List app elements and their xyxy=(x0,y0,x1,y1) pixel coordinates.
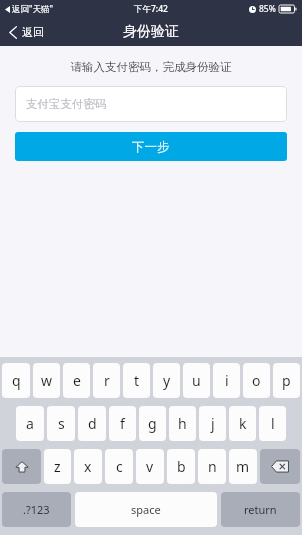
button[interactable]: Backspace xyxy=(260,449,300,484)
button[interactable]: q xyxy=(2,363,30,398)
button[interactable]: 支付宝支付密码 xyxy=(15,86,287,122)
button[interactable]: g xyxy=(139,406,166,441)
staticText: k xyxy=(239,414,247,433)
button[interactable]: 返回"天猫" xyxy=(0,0,57,18)
button[interactable]: z xyxy=(44,449,71,484)
button[interactable]: w xyxy=(33,363,60,398)
button[interactable]: i xyxy=(213,363,240,398)
staticText: h xyxy=(178,414,187,433)
button[interactable]: u xyxy=(183,363,210,398)
other: Alarm xyxy=(249,6,256,13)
staticText: m xyxy=(236,457,250,476)
staticText: b xyxy=(177,457,186,476)
staticText: t xyxy=(134,371,140,390)
button[interactable]: h xyxy=(169,406,196,441)
staticText: .?123 xyxy=(23,502,50,517)
staticText: a xyxy=(26,414,34,433)
button[interactable]: k xyxy=(229,406,256,441)
button[interactable]: e xyxy=(63,363,90,398)
staticText: w xyxy=(41,371,53,390)
staticText: c xyxy=(116,457,123,476)
staticText: o xyxy=(252,371,261,390)
staticText: 返回 xyxy=(22,25,44,39)
button[interactable]: f xyxy=(109,406,136,441)
staticText: g xyxy=(148,414,157,433)
staticText: v xyxy=(146,457,154,476)
staticText: 下一步 xyxy=(132,139,170,155)
button[interactable]: s xyxy=(47,406,75,441)
staticText: 身份验证 xyxy=(123,23,179,41)
staticText: n xyxy=(208,457,217,476)
button[interactable]: 返回 xyxy=(0,18,54,46)
staticText: l xyxy=(271,414,275,433)
staticText: s xyxy=(58,414,65,433)
button[interactable]: a xyxy=(16,406,44,441)
button[interactable]: return xyxy=(221,492,300,527)
button[interactable]: .?123 xyxy=(2,492,71,527)
button[interactable]: space xyxy=(75,492,217,527)
button[interactable]: y xyxy=(153,363,180,398)
button[interactable]: d xyxy=(78,406,106,441)
staticText: 支付宝支付密码 xyxy=(26,97,107,111)
button[interactable]: Shift xyxy=(2,449,41,484)
staticText: r xyxy=(104,371,110,390)
button[interactable]: r xyxy=(93,363,120,398)
staticText: e xyxy=(73,371,81,390)
staticText: 返回"天猫" xyxy=(12,3,53,15)
button[interactable]: n xyxy=(198,449,226,484)
staticText: 请输入支付密码，完成身份验证 xyxy=(0,60,302,74)
other: Battery 85 percent xyxy=(279,5,297,13)
button[interactable]: b xyxy=(167,449,195,484)
button[interactable]: t xyxy=(123,363,150,398)
staticText: 下午7:42 xyxy=(134,3,168,15)
staticText: x xyxy=(84,457,92,476)
staticText: space xyxy=(131,502,161,517)
staticText: z xyxy=(54,457,61,476)
staticText: q xyxy=(12,371,21,390)
button[interactable]: 下一步 xyxy=(15,132,287,161)
button[interactable]: x xyxy=(74,449,102,484)
staticText: d xyxy=(88,414,97,433)
button[interactable]: c xyxy=(105,449,133,484)
staticText: 85% xyxy=(259,3,276,15)
staticText: u xyxy=(192,371,201,390)
button[interactable]: m xyxy=(229,449,257,484)
staticText: p xyxy=(282,371,291,390)
staticText: i xyxy=(225,371,229,390)
button[interactable]: v xyxy=(136,449,164,484)
staticText: y xyxy=(163,371,171,390)
button[interactable]: o xyxy=(243,363,270,398)
staticText: return xyxy=(244,502,277,517)
staticText: j xyxy=(211,414,215,433)
button[interactable]: p xyxy=(273,363,300,398)
button[interactable]: l xyxy=(259,406,286,441)
staticText: f xyxy=(120,414,125,433)
button[interactable]: j xyxy=(199,406,226,441)
